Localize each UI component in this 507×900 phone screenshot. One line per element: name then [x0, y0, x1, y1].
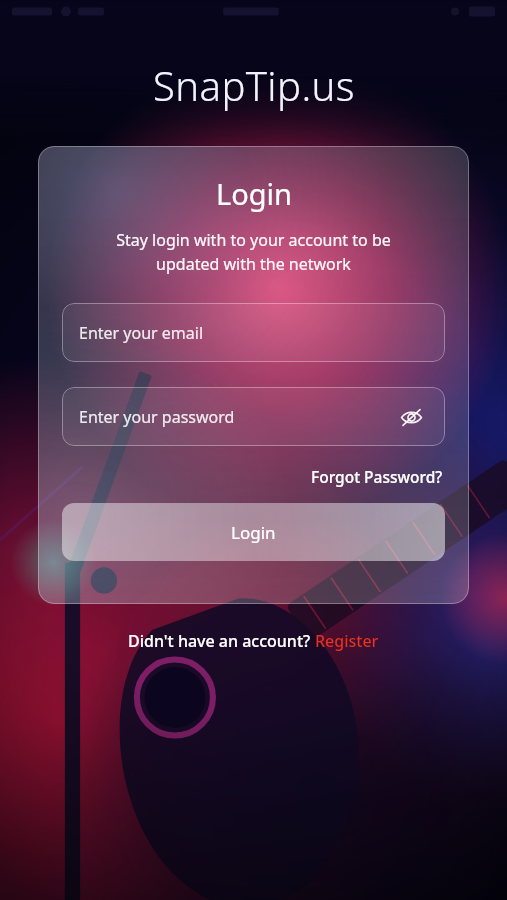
staticText: Enter your password	[79, 406, 235, 428]
staticText: Login	[216, 174, 292, 213]
button[interactable]: Enter your password	[62, 387, 445, 446]
button[interactable]: Didn't have an account?	[0, 630, 507, 652]
staticText: Enter your email	[79, 322, 204, 344]
button[interactable]: Login	[62, 503, 445, 561]
button[interactable]: Show password	[394, 400, 428, 434]
staticText: Login	[231, 521, 276, 544]
staticText: Didn't have an account?	[128, 630, 315, 652]
staticText: Register	[315, 630, 379, 652]
staticText: Forgot Password?	[311, 466, 443, 487]
button[interactable]: Enter your email	[62, 303, 445, 362]
staticText: SnapTip.us	[153, 58, 355, 112]
button[interactable]: Forgot Password?	[309, 464, 445, 489]
staticText: Stay login with to your account to be up…	[62, 229, 445, 275]
